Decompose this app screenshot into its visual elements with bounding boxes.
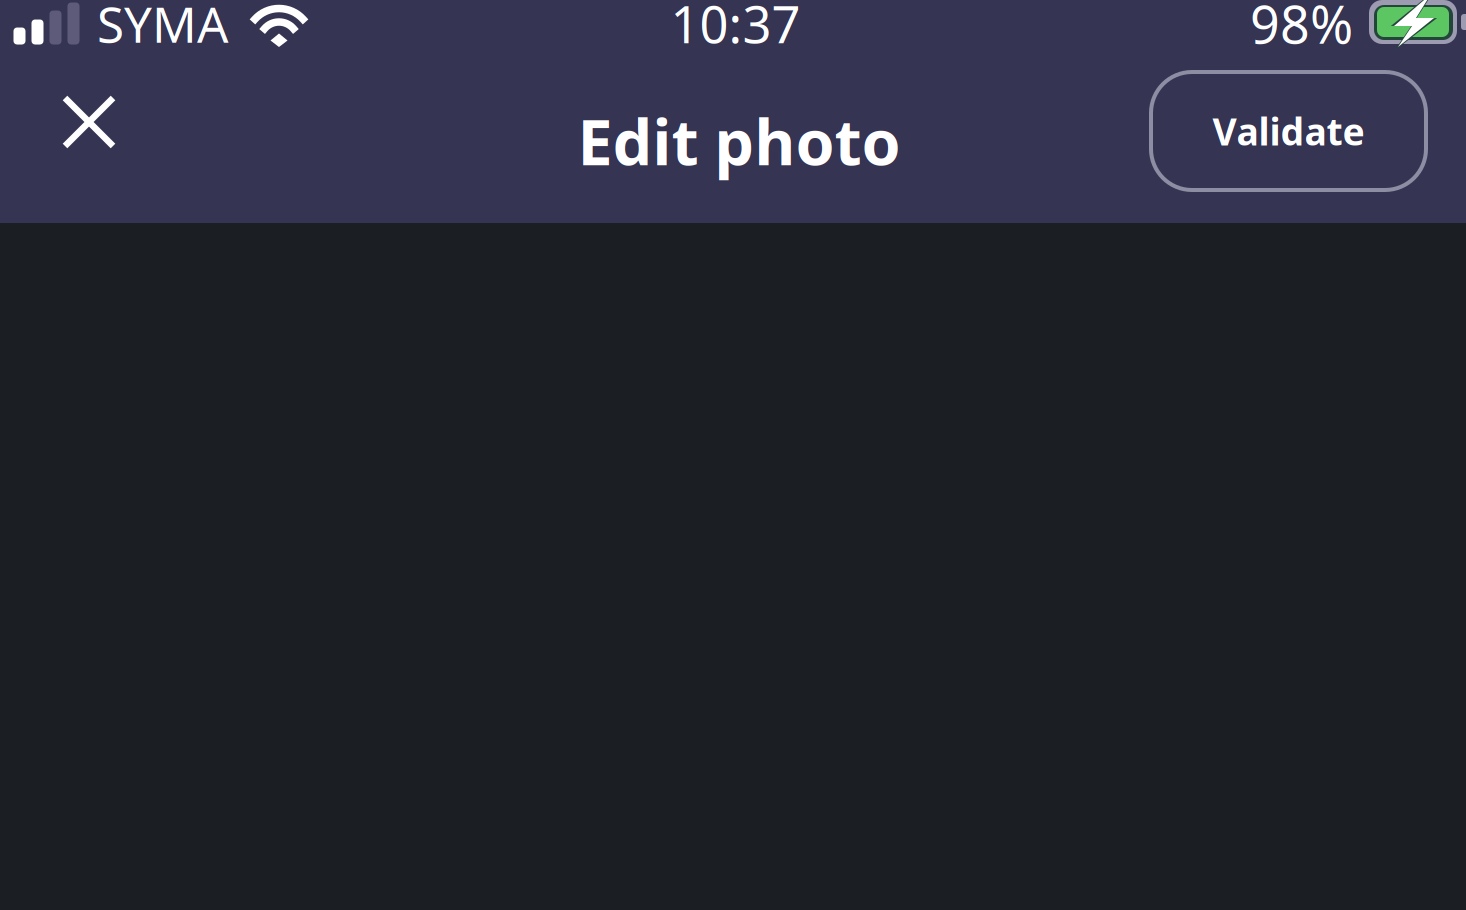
staticText: Validate (1212, 106, 1364, 156)
button[interactable]: Validate (1151, 72, 1426, 190)
staticText: 98% (1250, 0, 1353, 58)
button[interactable]: Close (53, 86, 125, 158)
staticText: Edit photo (577, 99, 900, 183)
staticText: 10:37 (670, 0, 800, 57)
staticText: SYMA (97, 0, 229, 56)
